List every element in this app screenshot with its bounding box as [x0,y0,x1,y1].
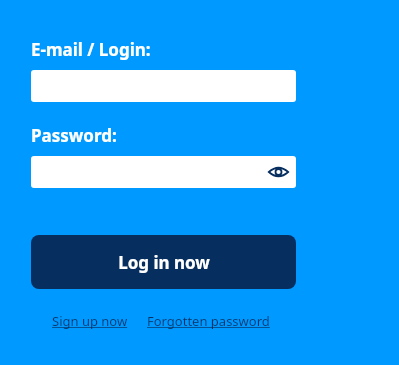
staticText: Log in now [118,251,210,274]
button[interactable]: Sign up now [52,312,128,330]
staticText: Password: [31,124,117,147]
button[interactable]: Show password [266,160,290,184]
staticText: Sign up now [52,312,128,330]
staticText: E-mail / Login: [31,38,151,61]
button[interactable] [31,70,296,102]
button[interactable]: Log in now [31,235,296,289]
staticText: Forgotten password [147,312,270,330]
button[interactable]: Forgotten password [147,312,270,330]
button[interactable]: Show password [31,156,296,188]
